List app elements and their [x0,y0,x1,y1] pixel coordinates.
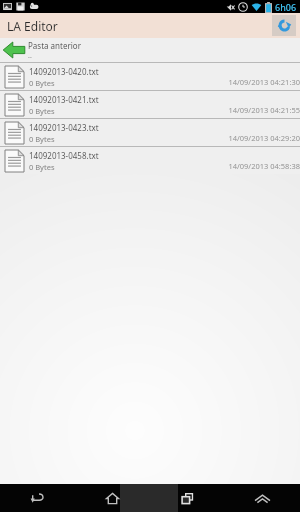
staticText: 14092013-0423.txt [29,122,99,133]
staticText: 14092013-0420.txt [29,66,99,77]
staticText: 14092013-0421.txt [29,94,99,105]
staticText: LA Editor [7,18,58,34]
staticText: .. [28,51,32,61]
button[interactable]: 14092013-0420.txt [0,63,300,90]
staticText: 14/09/2013 04:21:30 [228,77,300,87]
staticText: 14092013-0458.txt [29,150,99,161]
button[interactable]: Back [0,484,75,512]
button[interactable]: Menu [225,484,300,512]
staticText: 0 Bytes [29,162,55,172]
button[interactable]: Refresh [272,15,296,36]
button[interactable]: Recent apps [150,484,225,512]
button[interactable]: 14092013-0421.txt [0,91,300,118]
button[interactable]: Pasta anterior [0,38,300,62]
staticText: 14/09/2013 04:29:20 [228,133,300,143]
button[interactable]: 14092013-0423.txt [0,119,300,146]
staticText: 14/09/2013 04:58:38 [228,161,300,171]
staticText: 0 Bytes [29,134,55,144]
staticText: Pasta anterior [28,40,81,51]
staticText: 0 Bytes [29,78,55,88]
button[interactable]: Home [75,484,150,512]
staticText: 14/09/2013 04:21:55 [228,105,300,115]
staticText: 6h06 [275,1,297,13]
button[interactable]: 14092013-0458.txt [0,147,300,174]
staticText: 0 Bytes [29,106,55,116]
